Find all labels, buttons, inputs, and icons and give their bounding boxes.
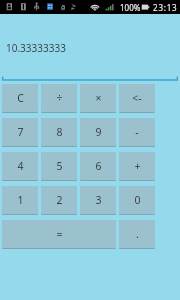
staticText: ÷ [56,91,63,105]
staticText: 4 [17,159,24,173]
button[interactable]: Seven [2,118,38,147]
button[interactable]: Four [2,152,38,181]
button[interactable]: Eight [41,118,77,147]
staticText: = [56,227,63,241]
button[interactable]: Three [80,186,116,215]
staticText: 3 [95,193,102,207]
staticText: 9 [95,125,102,139]
staticText: 5 [56,159,63,173]
staticText: 6 [95,159,102,173]
staticText: 0 [134,193,141,207]
staticText: 23:13 [153,2,178,13]
button[interactable]: Six [80,152,116,181]
staticText: a [61,1,66,11]
button[interactable]: Zero [119,186,155,215]
button[interactable]: Two [41,186,77,215]
button[interactable]: Divide [41,84,77,113]
staticText: . [136,227,139,241]
staticText: 100% [120,2,141,13]
button[interactable]: Plus [119,152,155,181]
staticText: 7 [17,125,24,139]
staticText: 8 [56,125,63,139]
button[interactable]: Clear [2,84,38,113]
button[interactable]: Minus [119,118,155,147]
button[interactable]: One [2,186,38,215]
staticText: 10.33333333 [6,41,66,55]
staticText: 1 [17,193,24,207]
staticText: - [135,125,139,139]
staticText: C [17,91,24,105]
staticText: + [134,159,141,173]
staticText: 2 [56,193,63,207]
button[interactable]: Backspace [119,84,155,113]
staticText: × [95,91,102,105]
button[interactable]: Nine [80,118,116,147]
button[interactable]: Multiply [80,84,116,113]
button[interactable]: Decimal point [119,220,155,249]
button[interactable]: Result display [0,14,180,81]
button[interactable]: Five [41,152,77,181]
staticText: <- [132,91,142,105]
button[interactable]: Equals [2,220,116,249]
